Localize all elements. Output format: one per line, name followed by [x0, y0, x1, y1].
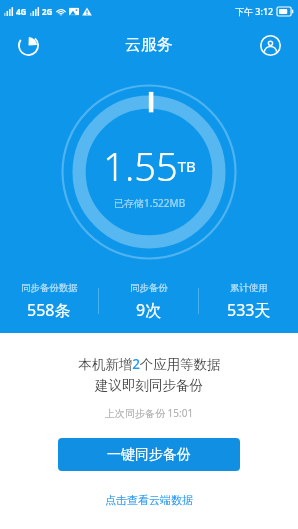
staticText: 点击查看云端数据	[105, 493, 193, 507]
staticText: 上次同步备份 15:01	[105, 406, 194, 420]
staticText: 558条	[27, 299, 71, 321]
button[interactable]: 累计使用	[199, 282, 298, 321]
staticText: 一键同步备份	[107, 446, 191, 464]
staticText: 下午 3:12	[235, 5, 274, 17]
staticText: 已存储1.522MB	[114, 196, 186, 210]
staticText: 本机新增2个应用等数据	[78, 355, 221, 373]
staticText: 533天	[227, 299, 271, 321]
staticText: 云服务	[125, 35, 173, 55]
staticText: 4G	[16, 6, 27, 17]
button[interactable]: 同步备份数据	[0, 282, 98, 321]
staticText: 建议即刻同步备份	[95, 377, 203, 394]
staticText: 1.55TB	[103, 140, 196, 192]
staticText: 累计使用	[230, 282, 268, 294]
button[interactable]: 点击查看云端数据	[97, 490, 201, 510]
button[interactable]: 同步备份	[99, 282, 198, 321]
staticText: 2G	[42, 6, 53, 17]
staticText: 同步备份数据	[21, 282, 78, 294]
staticText: 同步备份	[130, 282, 168, 294]
button[interactable]: Statistics	[11, 28, 45, 62]
staticText: 9次	[136, 299, 162, 321]
button[interactable]: Account	[253, 28, 287, 62]
button[interactable]: 一键同步备份	[58, 438, 240, 471]
